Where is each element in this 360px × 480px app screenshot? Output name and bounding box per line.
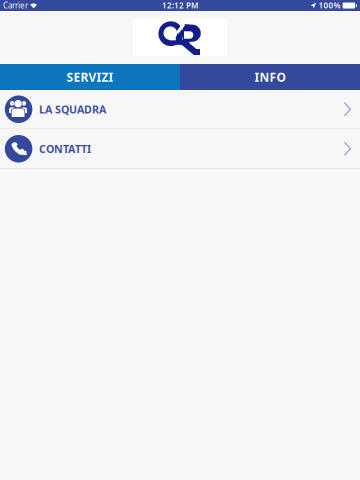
staticText: 12:12 PM	[162, 0, 198, 11]
staticText: LA SQUADRA	[39, 102, 106, 116]
staticText: INFO	[254, 69, 285, 85]
button[interactable]: CONTATTI	[0, 129, 360, 169]
staticText: SERVIZI	[66, 69, 113, 85]
button[interactable]: SERVIZI	[0, 64, 180, 90]
staticText: CONTATTI	[39, 142, 91, 156]
staticText: Carrier	[3, 0, 28, 11]
staticText: 100%	[319, 0, 341, 11]
button[interactable]: LA SQUADRA	[0, 90, 360, 129]
button[interactable]: INFO	[180, 64, 360, 90]
